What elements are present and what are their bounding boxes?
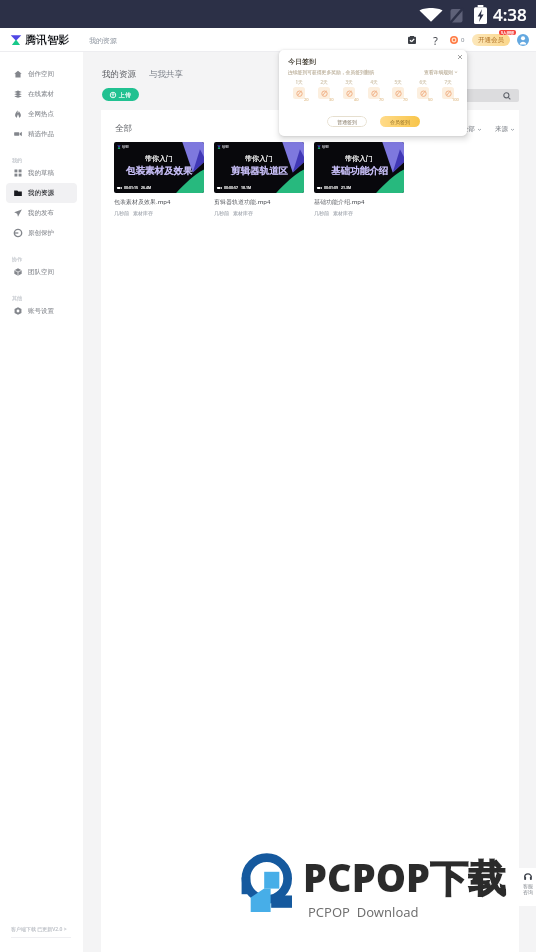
- button[interactable]: 来源: [495, 125, 515, 133]
- staticText: 带你入门: [145, 154, 173, 163]
- staticText: 智影: [322, 145, 329, 149]
- staticText: 包装素材及效果: [126, 165, 193, 177]
- staticText: 7天: [444, 79, 452, 85]
- staticText: 基础功能介绍.mp4: [314, 198, 365, 206]
- staticText: 我的草稿: [28, 169, 54, 177]
- button[interactable]: 开通会员: [472, 34, 510, 46]
- staticText: 18.1M: [241, 185, 252, 190]
- staticText: 剪辑器轨道区: [231, 165, 288, 177]
- button[interactable]: Tasks: [405, 33, 419, 47]
- button[interactable]: 智影: [214, 142, 304, 216]
- staticText: 70: [379, 97, 384, 102]
- button[interactable]: 全网热点: [6, 104, 77, 124]
- staticText: 带你入门: [245, 154, 273, 163]
- button[interactable]: 会员签到: [380, 116, 420, 127]
- staticText: 全部: [115, 123, 132, 134]
- staticText: 会员签到: [390, 119, 410, 125]
- button[interactable]: Credits: [450, 36, 465, 44]
- staticText: 几秒前: [214, 210, 229, 216]
- staticText: 协作: [12, 256, 22, 262]
- staticText: 30: [329, 97, 334, 102]
- button[interactable]: 客户端下载 已更新V2.0 >: [11, 926, 67, 933]
- staticText: 5天: [394, 79, 402, 85]
- staticText: 50: [428, 97, 433, 102]
- staticText: 咨询: [523, 889, 533, 895]
- button[interactable]: 创作空间: [6, 64, 77, 84]
- button[interactable]: Search: [420, 89, 519, 102]
- button[interactable]: 我的发布: [6, 203, 77, 223]
- staticText: PCPOP Download: [308, 903, 419, 921]
- staticText: 100: [452, 97, 459, 102]
- staticText: 70: [403, 97, 408, 102]
- button[interactable]: Customer service: [519, 868, 536, 906]
- staticText: 团队空间: [28, 268, 54, 276]
- staticText: 0: [461, 36, 465, 44]
- staticText: 普通签到: [337, 119, 357, 125]
- staticText: 3天: [345, 79, 353, 85]
- button[interactable]: 团队空间: [6, 262, 77, 282]
- staticText: 原创保护: [28, 229, 54, 237]
- staticText: 几秒前: [114, 210, 129, 216]
- staticText: 智影: [122, 145, 129, 149]
- button[interactable]: 上传: [102, 88, 139, 101]
- staticText: 26.4M: [141, 185, 152, 190]
- staticText: 我的: [12, 157, 22, 163]
- staticText: 在线素材: [28, 90, 54, 98]
- button[interactable]: Help: [428, 33, 442, 47]
- staticText: 全部: [462, 125, 475, 133]
- staticText: 今日签到: [288, 57, 316, 66]
- staticText: 我的发布: [28, 209, 54, 217]
- button[interactable]: 我的资源: [6, 183, 77, 203]
- button[interactable]: 与我共享: [149, 69, 183, 80]
- staticText: 开通会员: [478, 36, 504, 44]
- staticText: 剪辑器轨道功能.mp4: [214, 198, 271, 206]
- staticText: 上传: [119, 91, 131, 99]
- staticText: 连续签到可获得更多奖励，会员签到翻倍: [288, 69, 375, 75]
- staticText: 智影: [222, 145, 229, 149]
- staticText: 我的资源: [102, 69, 136, 80]
- staticText: 腾讯智影: [25, 33, 69, 47]
- button[interactable]: 全部: [462, 125, 482, 133]
- staticText: 客户端下载 已更新V2.0 >: [11, 926, 67, 933]
- staticText: 2天: [320, 79, 328, 85]
- staticText: 21.3M: [341, 185, 352, 190]
- staticText: 来源: [495, 125, 508, 133]
- staticText: ?: [433, 33, 438, 47]
- staticText: 4天: [370, 79, 378, 85]
- staticText: 精选作品: [28, 130, 54, 138]
- staticText: 6天: [419, 79, 427, 85]
- button[interactable]: 在线素材: [6, 84, 77, 104]
- staticText: 00:01:15: [124, 185, 138, 190]
- staticText: 查看详细规则: [424, 69, 453, 75]
- staticText: 素材库存: [133, 210, 153, 216]
- button[interactable]: 原创保护: [6, 223, 77, 243]
- staticText: 1天: [295, 79, 303, 85]
- staticText: 我的资源: [28, 189, 54, 197]
- button[interactable]: Profile: [517, 34, 529, 46]
- staticText: 包装素材及效果.mp4: [114, 198, 171, 206]
- button[interactable]: Close: [456, 53, 463, 60]
- button[interactable]: 智影: [114, 142, 204, 216]
- staticText: 00:00:57: [224, 185, 238, 190]
- staticText: 客服: [523, 883, 533, 889]
- button[interactable]: 智影: [314, 142, 404, 216]
- button[interactable]: 普通签到: [327, 116, 367, 127]
- button[interactable]: 我的草稿: [6, 163, 77, 183]
- button[interactable]: 精选作品: [6, 124, 77, 144]
- staticText: 20: [304, 97, 309, 102]
- button[interactable]: 查看详细规则: [424, 69, 458, 75]
- staticText: 素材库存: [233, 210, 253, 216]
- button[interactable]: 账号设置: [6, 301, 77, 321]
- staticText: 创作空间: [28, 70, 54, 78]
- staticText: 我的资源: [89, 36, 117, 45]
- staticText: 带你入门: [345, 154, 373, 163]
- button[interactable]: 我的资源: [102, 69, 136, 80]
- staticText: 账号设置: [28, 307, 54, 315]
- staticText: 5人拼团: [501, 30, 514, 35]
- staticText: 全网热点: [28, 110, 54, 118]
- staticText: PCPOP下载: [303, 851, 506, 903]
- staticText: 00:01:09: [324, 185, 338, 190]
- staticText: 与我共享: [149, 69, 183, 80]
- staticText: 几秒前: [314, 210, 329, 216]
- staticText: 4:38: [493, 3, 527, 26]
